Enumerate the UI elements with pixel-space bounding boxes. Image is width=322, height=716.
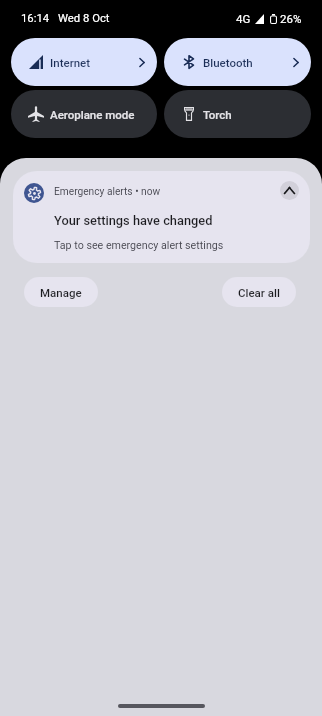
button[interactable]: Emergency alerts • now <box>13 171 310 263</box>
button[interactable]: Aeroplane mode <box>11 90 157 138</box>
staticText: Bluetooth <box>203 56 253 69</box>
staticText: 4G <box>236 12 251 25</box>
button[interactable]: Manage <box>24 277 98 307</box>
staticText: Manage <box>40 286 82 299</box>
staticText: Aeroplane mode <box>50 108 135 121</box>
staticText: Internet <box>50 56 91 69</box>
staticText: Wed 8 Oct <box>58 12 110 25</box>
button[interactable]: Collapse notification <box>280 181 299 200</box>
staticText: 16:14 <box>21 12 50 25</box>
staticText: Tap to see emergency alert settings <box>54 239 224 252</box>
button[interactable]: Clear all <box>222 277 296 307</box>
staticText: Clear all <box>238 286 280 299</box>
staticText: Emergency alerts • now <box>54 186 161 198</box>
button[interactable]: Bluetooth <box>164 38 311 86</box>
button[interactable]: Torch <box>164 90 311 138</box>
button[interactable]: Internet <box>11 38 157 86</box>
staticText: 26% <box>280 12 302 25</box>
staticText: Torch <box>203 108 232 121</box>
staticText: Your settings have changed <box>54 213 213 228</box>
